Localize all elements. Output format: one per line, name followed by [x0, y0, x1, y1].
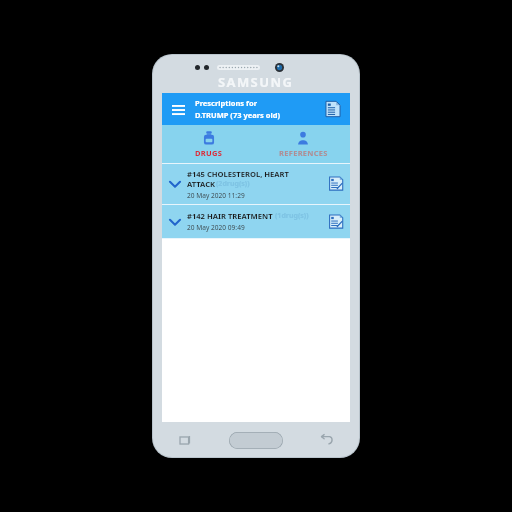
staticText: D.TRUMP (73 years old): [195, 110, 280, 120]
button[interactable]: Home: [229, 432, 283, 449]
staticText: 20 May 2020 09:49: [187, 223, 245, 232]
button[interactable]: Expand: [162, 164, 350, 204]
staticText: REFERENCES: [279, 148, 328, 158]
button[interactable]: Recent apps: [174, 429, 196, 451]
staticText: (2drug(s)): [216, 179, 250, 189]
staticText: DRUGS: [195, 148, 223, 158]
other: Expand: [165, 212, 185, 232]
staticText: 20 May 2020 11:29: [187, 191, 245, 200]
staticText: #145 CHOLESTEROL, HEART: [187, 169, 289, 179]
button[interactable]: DRUGS: [162, 125, 256, 163]
staticText: #142 HAIR TREATMENT: [187, 211, 275, 221]
button[interactable]: New prescription: [321, 97, 345, 121]
staticText: ATTACK: [187, 179, 216, 189]
button[interactable]: Menu: [167, 98, 189, 120]
other: Expand: [165, 174, 185, 194]
button[interactable]: REFERENCES: [256, 125, 350, 163]
button[interactable]: Back: [316, 429, 338, 451]
button[interactable]: Expand: [162, 205, 350, 238]
staticText: Prescriptions for: [195, 98, 258, 108]
button[interactable]: Open prescription: [325, 211, 347, 233]
staticText: SAMSUNG: [218, 73, 294, 91]
staticText: (1drug(s)): [275, 211, 309, 221]
button[interactable]: Open prescription: [325, 173, 347, 195]
